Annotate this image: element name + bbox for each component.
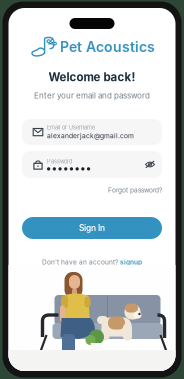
staticText: Don't have an account? [42,258,118,266]
button[interactable]: Email or Username [22,119,162,145]
staticText: Email or Username [47,124,95,131]
staticText: Enter your email and password [34,91,150,100]
staticText: alexanderjack@gmail.com [47,132,134,140]
staticText: Welcome back! [48,70,135,84]
button[interactable]: Forgot password? [22,186,162,194]
staticText: signup [120,258,142,266]
staticText: Sign In [79,223,105,233]
button[interactable]: Sign In [22,217,162,239]
button[interactable]: Password [22,151,162,178]
staticText: Forgot password? [108,186,162,194]
button[interactable]: signup [120,258,142,266]
staticText: Password [47,158,72,165]
staticText: Pet Acoustics [60,38,155,55]
